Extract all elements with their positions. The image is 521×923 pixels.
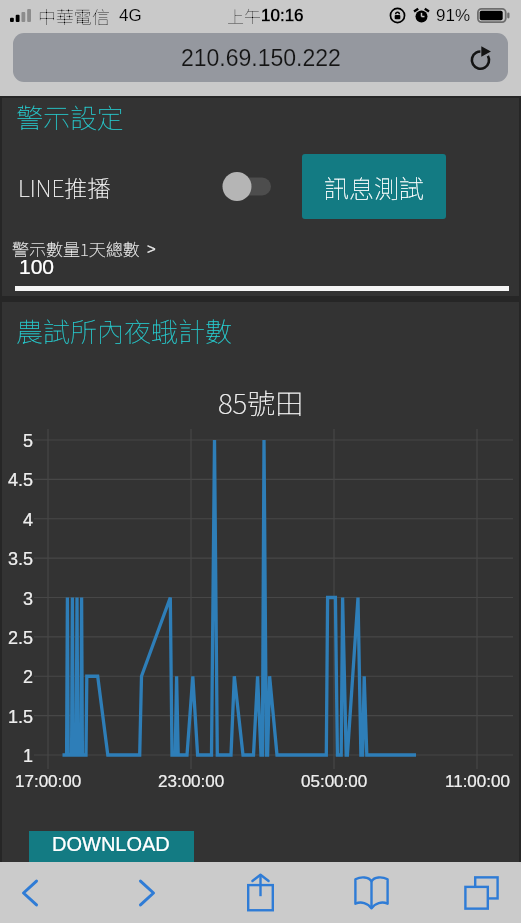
staticText: 10:16 xyxy=(261,6,304,25)
staticText: 1.5 xyxy=(8,707,34,727)
staticText: 3.5 xyxy=(8,549,34,569)
staticText: 4G xyxy=(119,6,142,25)
staticText: 05:00:00 xyxy=(301,772,368,791)
staticText: 23:00:00 xyxy=(158,772,225,791)
button[interactable]: Share xyxy=(233,862,287,923)
button[interactable]: Forward xyxy=(120,862,174,923)
button[interactable]: 警示數量1天總數 xyxy=(12,236,156,261)
staticText: 警示數量1天總數 xyxy=(12,236,140,261)
staticText: 210.69.150.222 xyxy=(181,45,341,71)
staticText: 警示設定 xyxy=(16,97,124,136)
button[interactable]: Bookmarks xyxy=(344,862,398,923)
button[interactable]: Back xyxy=(3,862,57,923)
button[interactable]: Tabs xyxy=(454,862,508,923)
staticText: 3 xyxy=(23,589,34,609)
staticText: DOWNLOAD xyxy=(52,833,170,855)
staticText: 5 xyxy=(23,431,34,451)
staticText: 訊息測試 xyxy=(324,169,425,205)
staticText: 17:00:00 xyxy=(15,772,82,791)
staticText: > xyxy=(147,240,156,257)
staticText: 2 xyxy=(23,667,34,687)
button[interactable]: 210.69.150.222 xyxy=(13,33,508,82)
button[interactable]: Reload page xyxy=(467,43,497,73)
staticText: 1 xyxy=(23,746,34,766)
staticText: 中華電信 xyxy=(38,3,110,29)
staticText: 91% xyxy=(436,6,471,25)
button[interactable]: LINE push notification toggle xyxy=(221,171,273,202)
staticText: 上午 xyxy=(227,3,261,28)
staticText: 2.5 xyxy=(8,628,34,648)
button[interactable]: 訊息測試 xyxy=(302,154,446,219)
staticText: 4 xyxy=(23,510,34,530)
staticText: LINE推播 xyxy=(18,170,111,203)
staticText: 11:00:00 xyxy=(445,772,510,791)
staticText: 85號田 xyxy=(218,382,304,423)
button[interactable]: DOWNLOAD xyxy=(29,831,194,873)
staticText: 農試所內夜蛾計數 xyxy=(16,311,232,350)
staticText: 4.5 xyxy=(8,470,34,490)
staticText: 100 xyxy=(19,255,55,278)
